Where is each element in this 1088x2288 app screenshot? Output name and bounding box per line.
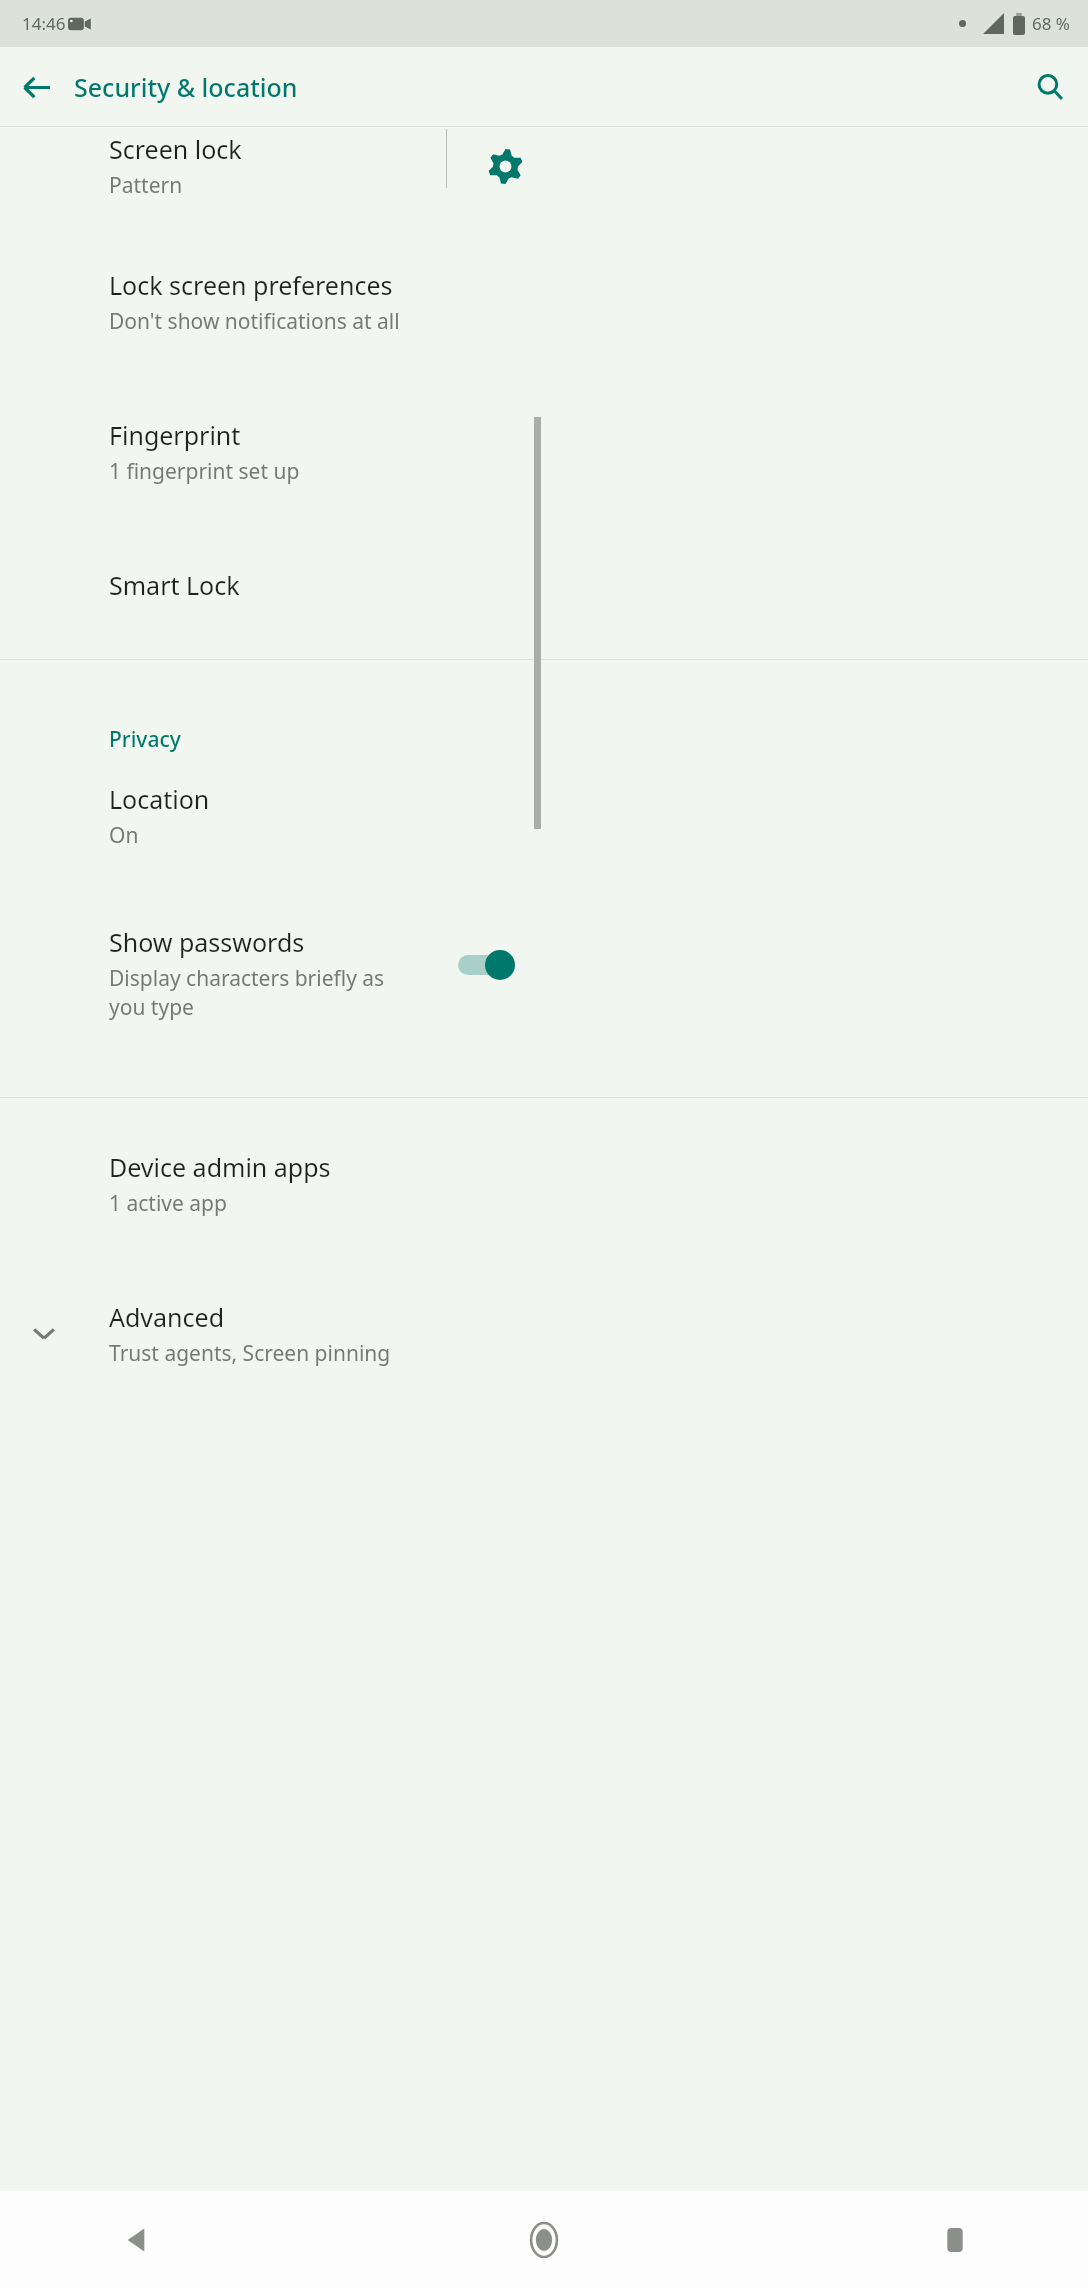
staticText: Privacy	[109, 725, 181, 754]
button[interactable]: Location	[0, 760, 1088, 903]
button[interactable]: Screen lock	[0, 127, 1088, 246]
staticText: Security & location	[74, 70, 298, 104]
staticText: Show passwords	[109, 925, 305, 959]
button[interactable]: Screen lock settings	[466, 127, 544, 205]
staticText: Trust agents, Screen pinning	[109, 1339, 391, 1368]
staticText: 14:46	[22, 12, 66, 35]
staticText: Advanced	[109, 1300, 225, 1334]
button[interactable]: Lock screen preferences	[0, 246, 1088, 396]
button[interactable]: Back	[8, 59, 64, 115]
button[interactable]: Device admin apps	[0, 1128, 1088, 1278]
staticText: Lock screen preferences	[109, 268, 393, 302]
staticText: Smart Lock	[109, 568, 240, 602]
staticText: Don't show notifications at all	[109, 307, 400, 336]
staticText: Screen lock	[109, 132, 242, 166]
button[interactable]: Show passwords	[0, 903, 1088, 1097]
button[interactable]: Search	[1022, 59, 1078, 115]
staticText: Display characters briefly as you type	[109, 964, 419, 1022]
button[interactable]: Advanced	[0, 1278, 1088, 1428]
staticText: Device admin apps	[109, 1150, 331, 1184]
staticText: Location	[109, 782, 210, 816]
staticText: 68 %	[1032, 12, 1070, 35]
button[interactable]: Recent apps	[919, 2204, 991, 2276]
button[interactable]: Fingerprint	[0, 396, 1088, 546]
staticText: 1 active app	[109, 1189, 227, 1218]
staticText: 1 fingerprint set up	[109, 457, 300, 486]
staticText: On	[109, 821, 139, 850]
staticText: Pattern	[109, 171, 183, 200]
button[interactable]: Home	[508, 2204, 580, 2276]
staticText: Fingerprint	[109, 418, 241, 452]
button[interactable]: Smart Lock	[0, 546, 1088, 659]
button[interactable]: Back	[100, 2204, 172, 2276]
